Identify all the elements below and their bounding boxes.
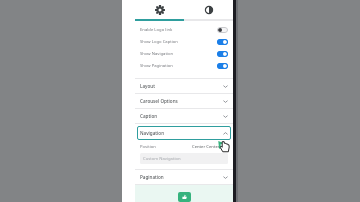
button[interactable]: Layout <box>140 79 228 93</box>
staticText: Carousel Options <box>140 98 223 104</box>
staticText: Show Logo Caption <box>140 39 217 45</box>
staticText: Show Navigation <box>140 51 217 57</box>
staticText: Show Pagination <box>140 63 217 69</box>
staticText: Layout <box>140 83 223 89</box>
button[interactable]: Show Navigation <box>140 48 228 60</box>
button[interactable]: Custom Navigation <box>140 153 228 164</box>
button[interactable]: Show Logo Caption <box>140 36 228 48</box>
button[interactable]: Pagination <box>140 170 228 184</box>
button[interactable]: Enable Logo link <box>140 24 228 36</box>
staticText: Pagination <box>140 174 223 180</box>
button[interactable]: Caption <box>140 109 228 123</box>
staticText: Navigation <box>140 130 223 136</box>
button[interactable]: Style tab <box>184 0 233 19</box>
button[interactable]: Carousel Options <box>140 94 228 108</box>
staticText: Custom Navigation <box>143 156 181 162</box>
button[interactable]: Add <box>178 192 191 202</box>
staticText: Center Center <box>192 144 220 150</box>
staticText: Position <box>140 144 156 150</box>
button[interactable]: Settings tab <box>135 0 184 19</box>
button[interactable]: Position <box>140 140 228 153</box>
button[interactable]: Show Pagination <box>140 60 228 72</box>
button[interactable]: Navigation <box>137 126 231 140</box>
staticText: Enable Logo link <box>140 27 217 33</box>
staticText: Caption <box>140 113 223 119</box>
